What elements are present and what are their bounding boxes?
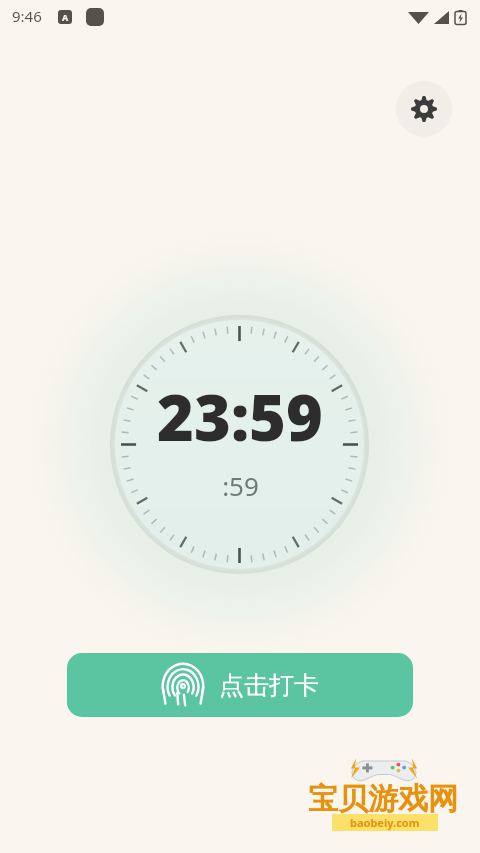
staticText: 23:59 (157, 374, 323, 460)
button[interactable]: 点击打卡 (67, 653, 413, 717)
staticText: 9:46 (12, 6, 42, 26)
button[interactable]: Settings (396, 81, 452, 137)
staticText: A (62, 11, 69, 23)
staticText: :59 (222, 468, 259, 503)
staticText: baobeiy.com (350, 815, 420, 830)
staticText: 点击打卡 (219, 670, 319, 701)
staticText: 宝贝游戏网 (308, 780, 458, 818)
